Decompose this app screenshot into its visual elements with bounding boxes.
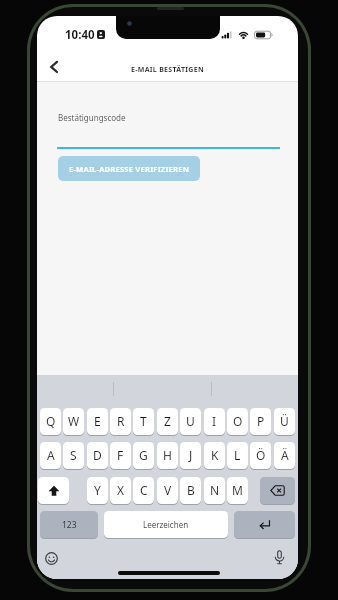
staticText: F [117, 447, 124, 463]
staticText: Leerzeichen [143, 519, 189, 530]
button[interactable] [38, 477, 69, 504]
button[interactable]: W [63, 408, 84, 435]
staticText: Bestätigungscode [58, 112, 126, 123]
staticText: Ü [280, 413, 289, 429]
staticText: I [212, 413, 217, 429]
button[interactable]: V [157, 477, 178, 504]
staticText: Y [94, 482, 101, 498]
staticText: N [210, 482, 220, 498]
button[interactable]: U [180, 408, 201, 435]
staticText: U [186, 413, 195, 429]
staticText: C [140, 482, 148, 498]
button[interactable]: Ä [274, 442, 295, 469]
staticText: P [257, 413, 265, 429]
button[interactable]: T [133, 408, 154, 435]
staticText: E-MAIL BESTÄTIGEN [131, 65, 204, 75]
button[interactable] [234, 511, 295, 538]
button[interactable]: Y [87, 477, 108, 504]
staticText: D [93, 447, 102, 463]
button[interactable]: L [227, 442, 248, 469]
button[interactable] [44, 551, 59, 566]
button[interactable]: Ü [274, 408, 295, 435]
button[interactable]: P [250, 408, 271, 435]
staticText: X [117, 482, 125, 498]
staticText: Ö [256, 447, 266, 463]
staticText: Ä [281, 447, 289, 463]
button[interactable]: A [40, 442, 61, 469]
staticText: 123 [62, 519, 77, 531]
button[interactable]: Leerzeichen [104, 511, 228, 538]
staticText: E [94, 413, 101, 429]
button[interactable] [272, 549, 287, 567]
button[interactable]: C [133, 477, 154, 504]
button[interactable]: E [87, 408, 108, 435]
staticText: L [234, 447, 241, 463]
staticText: B [187, 482, 195, 498]
staticText: Z [164, 413, 171, 429]
button[interactable]: K [204, 442, 225, 469]
button[interactable]: Z [157, 408, 178, 435]
staticText: W [68, 413, 80, 429]
staticText: G [139, 447, 148, 463]
staticText: R [117, 413, 125, 429]
staticText: M [232, 482, 243, 498]
button[interactable]: 123 [40, 511, 98, 538]
staticText: H [163, 447, 172, 463]
staticText: A [47, 447, 55, 463]
button[interactable]: B [180, 477, 201, 504]
button[interactable]: S [63, 442, 84, 469]
button[interactable]: F [110, 442, 131, 469]
staticText: O [233, 413, 243, 429]
staticText: T [140, 413, 147, 429]
button[interactable]: E-MAIL-ADRESSE VERIFIZIEREN [58, 156, 200, 181]
staticText: J [189, 447, 193, 463]
staticText: K [211, 447, 219, 463]
staticText: E-MAIL-ADRESSE VERIFIZIEREN [69, 164, 190, 174]
button[interactable] [41, 54, 67, 80]
button[interactable]: G [133, 442, 154, 469]
staticText: Q [46, 413, 56, 429]
button[interactable]: D [87, 442, 108, 469]
button[interactable]: Q [40, 408, 61, 435]
button[interactable]: N [204, 477, 225, 504]
button[interactable]: X [110, 477, 131, 504]
button[interactable]: J [180, 442, 201, 469]
button[interactable]: M [227, 477, 248, 504]
staticText: V [164, 482, 172, 498]
staticText: S [70, 447, 77, 463]
button[interactable]: R [110, 408, 131, 435]
staticText: 10:40 [65, 27, 95, 43]
button[interactable]: O [227, 408, 248, 435]
button[interactable] [260, 477, 295, 504]
button[interactable]: H [157, 442, 178, 469]
button[interactable]: I [204, 408, 225, 435]
button[interactable]: Ö [250, 442, 271, 469]
